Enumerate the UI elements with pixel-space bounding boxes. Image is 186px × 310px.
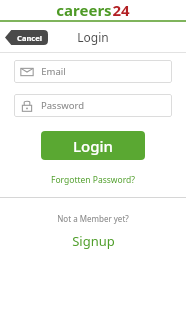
- button[interactable]: Login: [41, 131, 145, 160]
- staticText: Email: [41, 65, 66, 78]
- staticText: Login: [77, 29, 109, 45]
- button[interactable]: Password: [14, 94, 172, 117]
- staticText: 24: [112, 0, 130, 20]
- button[interactable]: Cancel: [5, 30, 48, 45]
- button[interactable]: Email: [14, 60, 172, 83]
- button[interactable]: Signup: [64, 230, 123, 252]
- button[interactable]: Forgotten Password?: [45, 172, 141, 188]
- staticText: Signup: [72, 232, 115, 250]
- staticText: Password: [41, 99, 84, 112]
- staticText: Cancel: [17, 33, 42, 43]
- staticText: Forgotten Password?: [51, 174, 135, 186]
- staticText: Login: [73, 136, 113, 156]
- staticText: Not a Member yet?: [57, 213, 129, 224]
- staticText: careers: [56, 0, 112, 20]
